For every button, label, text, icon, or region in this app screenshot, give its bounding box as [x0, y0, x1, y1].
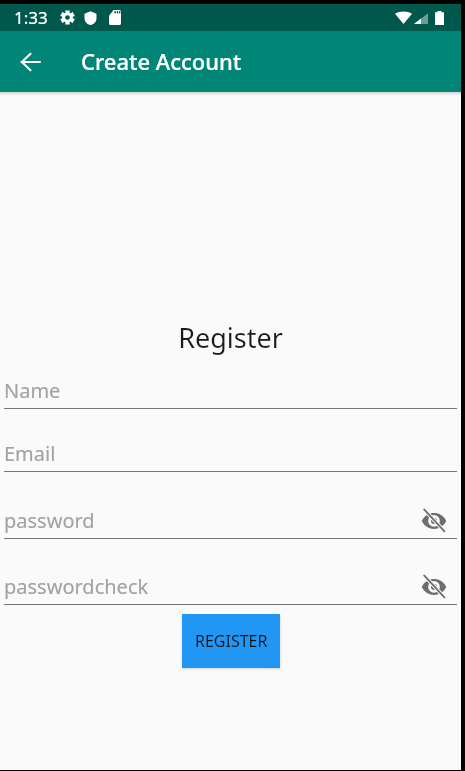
staticText: Email: [4, 440, 56, 467]
button[interactable]: Toggle password visibility: [418, 504, 450, 536]
staticText: 1:33: [14, 6, 48, 29]
button[interactable]: Toggle password visibility: [418, 570, 450, 602]
staticText: REGISTER: [195, 630, 268, 652]
button[interactable]: REGISTER: [182, 614, 280, 668]
button[interactable]: Back: [0, 31, 61, 92]
staticText: Name: [4, 377, 61, 404]
staticText: password: [4, 507, 95, 534]
staticText: Create Account: [81, 46, 242, 76]
staticText: Register: [0, 319, 461, 356]
staticText: passwordcheck: [4, 573, 149, 600]
